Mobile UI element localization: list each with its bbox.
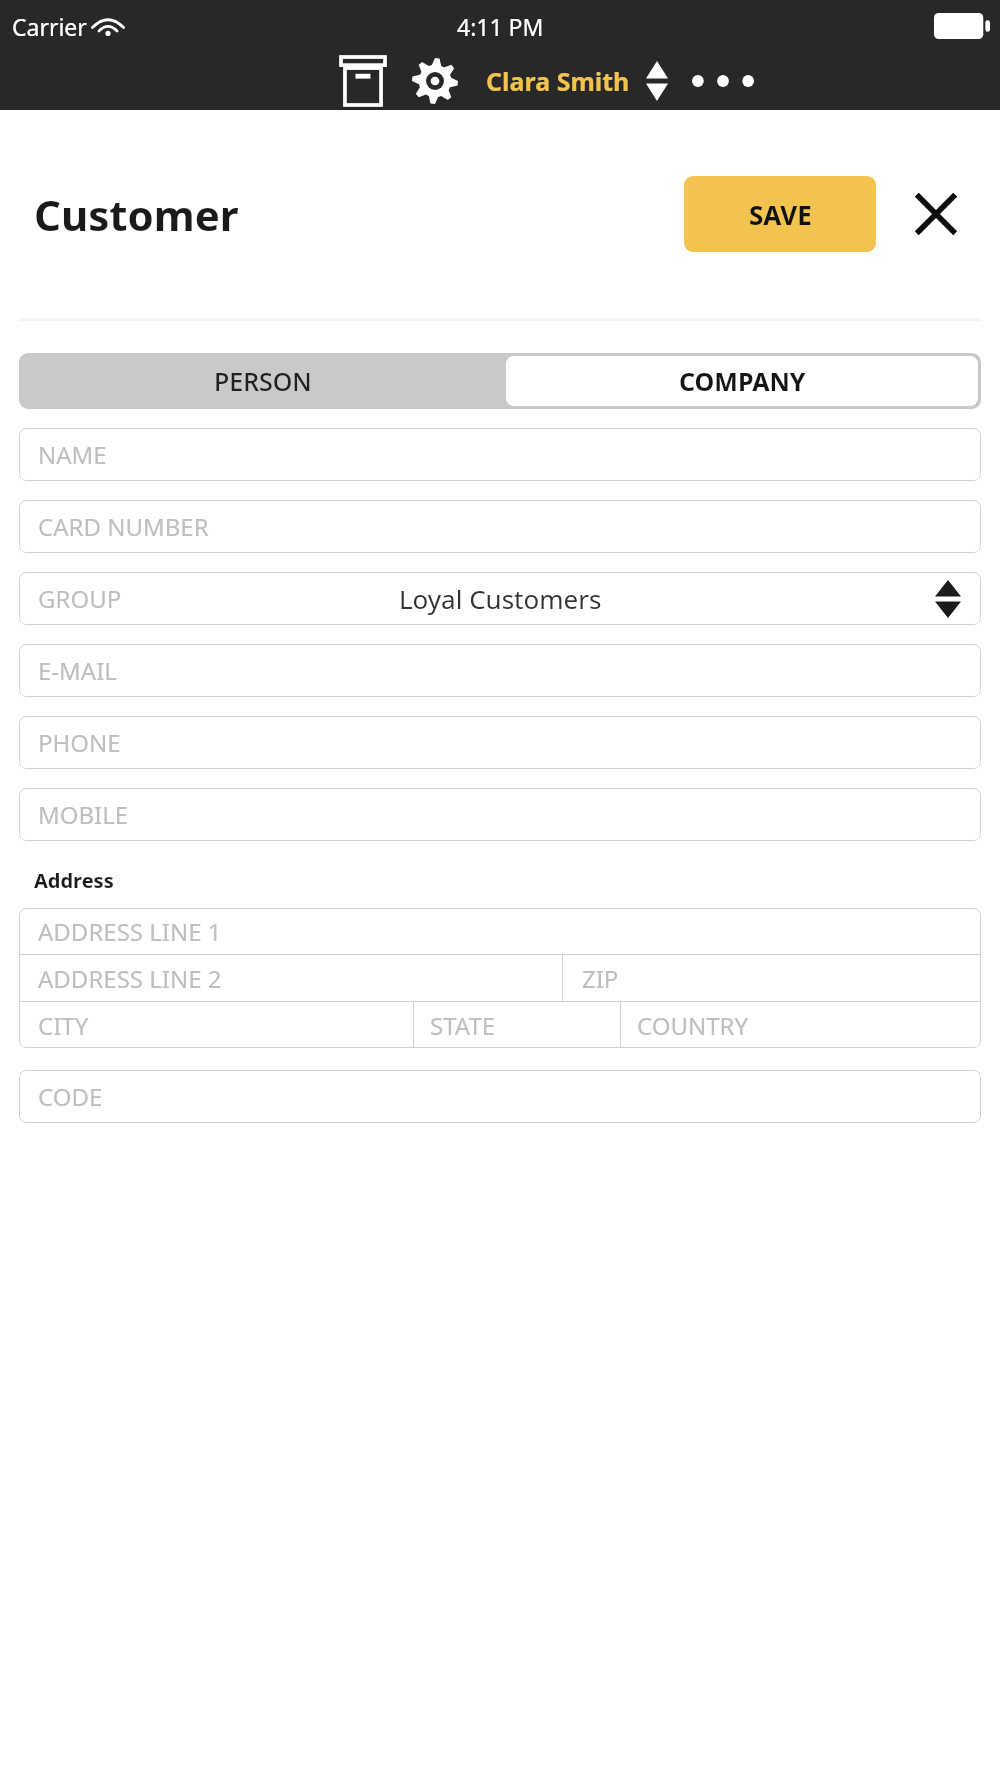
staticText: PERSON: [214, 364, 312, 398]
staticText: COMPANY: [679, 364, 806, 398]
button[interactable]: CITY: [19, 1002, 413, 1048]
button[interactable]: E-MAIL: [19, 644, 981, 697]
staticText: ZIP: [582, 962, 619, 995]
staticText: Clara Smith: [486, 64, 630, 98]
staticText: NAME: [38, 438, 107, 471]
button[interactable]: COUNTRY: [621, 1002, 981, 1048]
button[interactable]: STATE: [414, 1002, 620, 1048]
staticText: GROUP: [38, 582, 122, 615]
button[interactable]: GROUP: [19, 572, 981, 625]
button[interactable]: ADDRESS LINE 2: [19, 955, 562, 1001]
staticText: 4:11 PM: [457, 11, 544, 42]
button[interactable]: CARD NUMBER: [19, 500, 981, 553]
staticText: E-MAIL: [38, 654, 117, 687]
staticText: PHONE: [38, 726, 121, 759]
button[interactable]: Settings: [408, 54, 462, 108]
staticText: COUNTRY: [637, 1009, 749, 1042]
button[interactable]: ZIP: [563, 955, 981, 1001]
staticText: CARD NUMBER: [38, 510, 209, 543]
button[interactable]: NAME: [19, 428, 981, 481]
staticText: MOBILE: [38, 798, 129, 831]
button[interactable]: ADDRESS LINE 1: [19, 908, 981, 954]
button[interactable]: PHONE: [19, 716, 981, 769]
button[interactable]: Clara Smith: [482, 55, 672, 107]
button[interactable]: Archive: [336, 54, 390, 108]
staticText: SAVE: [749, 197, 812, 232]
button[interactable]: SAVE: [684, 176, 876, 252]
button[interactable]: PERSON: [19, 353, 506, 409]
staticText: Carrier: [12, 11, 87, 42]
button[interactable]: CODE: [19, 1070, 981, 1123]
staticText: ADDRESS LINE 2: [38, 962, 222, 995]
button[interactable]: More options: [688, 54, 758, 108]
button[interactable]: COMPANY: [506, 356, 978, 406]
staticText: CITY: [38, 1009, 89, 1042]
staticText: STATE: [430, 1009, 496, 1042]
staticText: Customer: [34, 186, 239, 243]
button[interactable]: MOBILE: [19, 788, 981, 841]
staticText: ADDRESS LINE 1: [38, 915, 222, 948]
staticText: CODE: [38, 1080, 103, 1113]
staticText: Loyal Customers: [399, 581, 602, 616]
staticText: Address: [34, 867, 114, 894]
button[interactable]: Close: [898, 176, 974, 252]
